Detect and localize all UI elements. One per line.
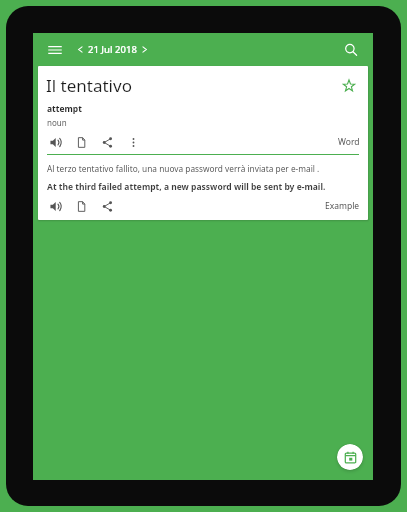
- button[interactable]: 21 Jul 2018: [75, 41, 150, 58]
- button[interactable]: Copy: [69, 130, 93, 154]
- button[interactable]: More options: [121, 130, 145, 154]
- staticText: Il tentativo: [46, 74, 337, 97]
- staticText: Al terzo tentativo fallito, una nuova pa…: [47, 163, 320, 174]
- button[interactable]: Favourite: [337, 74, 361, 98]
- staticText: At the third failed attempt, a new passw…: [47, 181, 326, 193]
- button[interactable]: Search: [339, 38, 363, 62]
- staticText: attempt: [47, 103, 82, 115]
- staticText: noun: [47, 117, 67, 128]
- button[interactable]: Share example: [95, 194, 119, 218]
- button[interactable]: Listen to example: [43, 194, 67, 218]
- button[interactable]: Pick date: [337, 444, 363, 470]
- button[interactable]: Copy example: [69, 194, 93, 218]
- button[interactable]: Share: [95, 130, 119, 154]
- button[interactable]: Listen: [43, 130, 67, 154]
- staticText: Word: [338, 136, 360, 148]
- staticText: Example: [325, 200, 360, 212]
- staticText: 21 Jul 2018: [88, 43, 137, 56]
- button[interactable]: Menu: [43, 38, 67, 62]
